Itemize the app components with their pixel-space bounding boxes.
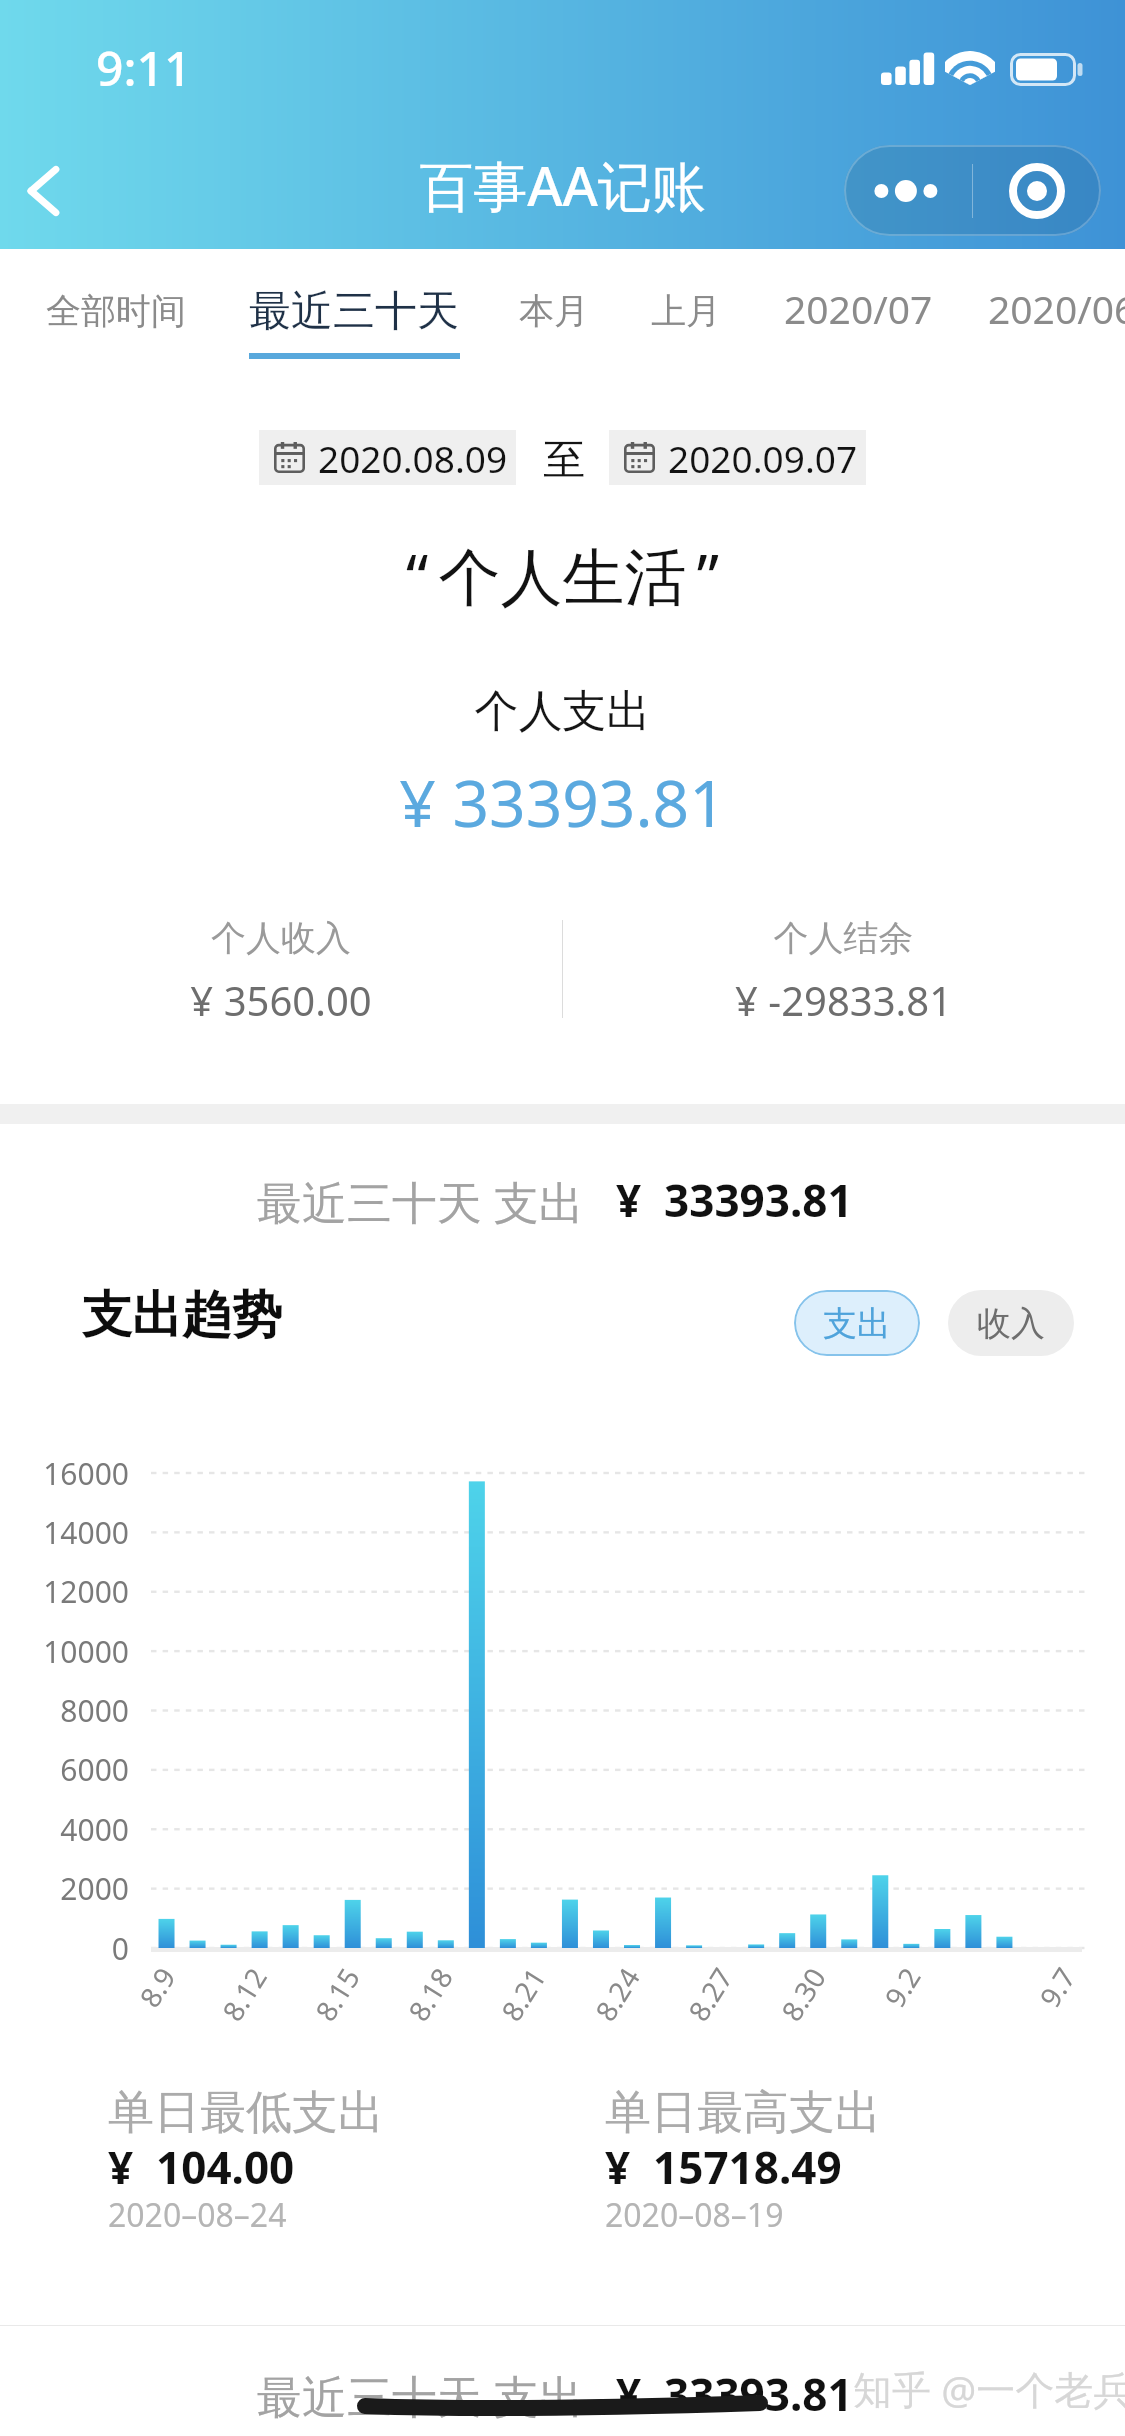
staticText: 2020/07 bbox=[784, 282, 933, 335]
staticText: 10000 bbox=[2, 1631, 129, 1672]
staticText: 上月 bbox=[651, 289, 721, 333]
staticText: ¥ 3560.00 bbox=[0, 973, 562, 1027]
staticText: 8.27 bbox=[679, 1960, 741, 2028]
staticText: 0 bbox=[2, 1928, 129, 1969]
button[interactable]: 2020/06 bbox=[988, 282, 1125, 335]
button[interactable]: 本月 bbox=[519, 289, 589, 333]
staticText: ¥ -29833.81 bbox=[562, 973, 1125, 1027]
staticText: 最近三十天 支出 bbox=[257, 2365, 584, 2426]
button[interactable]: 全部时间 bbox=[46, 289, 186, 333]
staticText: 全部时间 bbox=[46, 289, 186, 333]
staticText: 2020–08–24 bbox=[108, 2193, 287, 2237]
staticText: ¥ 104.00 bbox=[108, 2137, 295, 2197]
staticText: 个人结余 bbox=[562, 916, 1125, 960]
staticText: 8.21 bbox=[492, 1960, 554, 2028]
button[interactable]: Back bbox=[6, 153, 82, 229]
staticText: 16000 bbox=[2, 1453, 129, 1494]
staticText: 最近三十天 支出 bbox=[257, 1171, 584, 1232]
staticText: 最近三十天 bbox=[249, 285, 459, 338]
button[interactable]: 2020.09.07 bbox=[609, 430, 866, 485]
button[interactable]: 收入 bbox=[948, 1290, 1074, 1356]
staticText: 8000 bbox=[2, 1690, 129, 1731]
staticText: 4000 bbox=[2, 1809, 129, 1850]
staticText: 8.12 bbox=[213, 1960, 275, 2028]
staticText: 14000 bbox=[2, 1512, 129, 1553]
staticText: 2000 bbox=[2, 1868, 129, 1909]
staticText: 8.30 bbox=[772, 1960, 834, 2028]
staticText: 百事AA记账 bbox=[0, 148, 1125, 222]
button[interactable]: Close bbox=[973, 145, 1101, 236]
staticText: 知乎 @一个老兵 bbox=[853, 2362, 1125, 2415]
staticText: 9.2 bbox=[875, 1960, 929, 2014]
staticText: 8.18 bbox=[399, 1960, 461, 2028]
staticText: ¥ 15718.49 bbox=[605, 2137, 842, 2197]
staticText: 个人收入 bbox=[0, 916, 562, 960]
button[interactable]: 2020.08.09 bbox=[259, 430, 516, 485]
staticText: 本月 bbox=[519, 289, 589, 333]
staticText: “ 个人生活 ” bbox=[0, 533, 1125, 618]
button[interactable]: More options bbox=[844, 145, 972, 236]
staticText: ¥ 33393.81 bbox=[616, 1170, 853, 1230]
staticText: 9.7 bbox=[1030, 1960, 1084, 2014]
staticText: 2020/06 bbox=[988, 282, 1125, 335]
button[interactable]: 最近三十天 bbox=[249, 285, 459, 338]
staticText: 单日最高支出 bbox=[605, 2084, 881, 2142]
staticText: 支出 bbox=[823, 1302, 891, 1345]
staticText: 至 bbox=[543, 434, 585, 487]
staticText: ¥ 33393.81 bbox=[616, 2364, 853, 2424]
staticText: 6000 bbox=[2, 1749, 129, 1790]
button[interactable]: 支出 bbox=[794, 1290, 920, 1356]
staticText: ¥ 33393.81 bbox=[0, 759, 1125, 846]
staticText: 2020–08–19 bbox=[605, 2193, 784, 2237]
staticText: 个人支出 bbox=[0, 684, 1125, 739]
staticText: 收入 bbox=[977, 1302, 1045, 1345]
staticText: 2020.08.09 bbox=[318, 433, 508, 483]
staticText: 8.9 bbox=[130, 1960, 184, 2014]
staticText: 单日最低支出 bbox=[108, 2084, 384, 2142]
staticText: 9:11 bbox=[96, 35, 192, 100]
staticText: 支出趋势 bbox=[82, 1284, 282, 1347]
staticText: 8.24 bbox=[586, 1960, 648, 2028]
staticText: 2020.09.07 bbox=[668, 433, 858, 483]
staticText: 12000 bbox=[2, 1571, 129, 1612]
button[interactable]: 2020/07 bbox=[784, 282, 933, 335]
staticText: 8.15 bbox=[306, 1960, 368, 2028]
button[interactable]: 上月 bbox=[651, 289, 721, 333]
